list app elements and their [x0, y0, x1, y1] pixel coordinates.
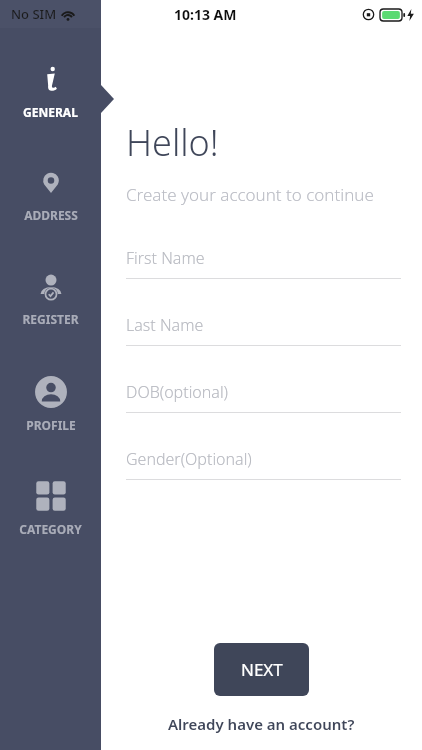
button[interactable]: CATEGORY — [0, 477, 101, 537]
staticText: REGISTER — [22, 311, 79, 327]
button[interactable]: Already have an account? — [162, 712, 361, 736]
staticText: ADDRESS — [24, 207, 78, 223]
staticText: CATEGORY — [19, 521, 82, 537]
staticText: Hello! — [126, 118, 219, 167]
staticText: Already have an account? — [168, 714, 355, 734]
staticText: GENERAL — [23, 104, 78, 120]
button[interactable]: PROFILE — [0, 373, 101, 433]
staticText: PROFILE — [26, 417, 76, 433]
staticText: Create your account to continue — [126, 183, 374, 206]
staticText: 10:13 AM — [174, 5, 237, 24]
staticText: Gender(Optional) — [126, 448, 252, 470]
staticText: NEXT — [241, 658, 283, 681]
staticText: Last Name — [126, 314, 204, 336]
staticText: No SIM — [11, 5, 57, 23]
button[interactable]: Gender(Optional) — [126, 439, 401, 506]
button[interactable]: NEXT — [214, 643, 309, 696]
button[interactable]: ADDRESS — [0, 163, 101, 223]
button[interactable]: REGISTER — [0, 267, 101, 327]
button[interactable]: Last Name — [126, 305, 401, 372]
button[interactable]: GENERAL — [0, 60, 101, 120]
staticText: DOB(optional) — [126, 381, 229, 403]
button[interactable]: First Name — [126, 238, 401, 305]
button[interactable]: DOB(optional) — [126, 372, 401, 439]
staticText: First Name — [126, 247, 205, 269]
